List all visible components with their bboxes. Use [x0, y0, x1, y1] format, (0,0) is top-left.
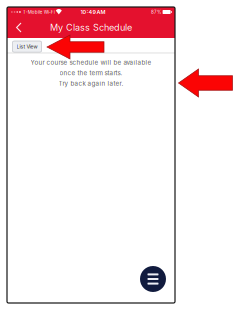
button[interactable]: Back [7, 17, 28, 37]
staticText: T-Mobile Wi-Fi [23, 9, 55, 15]
staticText: once the term starts. [59, 69, 122, 77]
staticText: My Class Schedule [50, 22, 132, 33]
staticText: Your course schedule will be available [30, 59, 151, 66]
button[interactable]: List View [12, 41, 41, 52]
button[interactable]: Menu [140, 266, 166, 292]
staticText: 87% [151, 9, 161, 15]
staticText: 10:49 AM [80, 9, 105, 15]
staticText: List View [16, 43, 37, 50]
staticText: Try back again later. [58, 80, 123, 87]
